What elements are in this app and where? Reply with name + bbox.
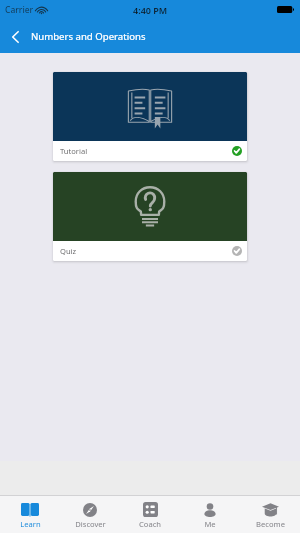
button[interactable]: Become [240, 496, 300, 533]
staticText: Quiz [60, 246, 77, 256]
staticText: Coach [139, 519, 161, 529]
button[interactable]: Quiz [53, 172, 247, 261]
button[interactable]: Discover [60, 496, 120, 533]
staticText: Discover [75, 519, 106, 529]
button[interactable]: Me [180, 496, 240, 533]
staticText: Tutorial [60, 146, 88, 156]
staticText: Me [204, 519, 216, 529]
button[interactable]: Tutorial [53, 72, 247, 161]
staticText: Carrier [5, 4, 34, 16]
staticText: Numbers and Operations [31, 30, 146, 43]
button[interactable]: Coach [120, 496, 180, 533]
staticText: 4:40 PM [133, 4, 168, 16]
button[interactable]: Learn [0, 496, 60, 533]
button[interactable]: Back [0, 20, 31, 53]
staticText: Become [256, 519, 285, 529]
staticText: Learn [20, 519, 41, 529]
